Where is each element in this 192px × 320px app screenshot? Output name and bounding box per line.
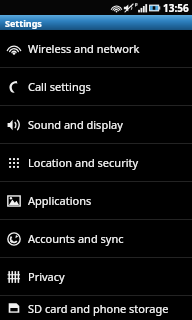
staticText: Wireless and network — [28, 41, 140, 56]
staticText: 13:56 — [163, 1, 189, 15]
button[interactable]: Location and security — [0, 144, 192, 181]
button[interactable]: Wireless and network — [0, 30, 192, 67]
staticText: Accounts and sync — [28, 231, 124, 246]
staticText: Applications — [28, 193, 92, 208]
staticText: Location and security — [28, 155, 139, 170]
staticText: Call settings — [28, 79, 91, 94]
button[interactable]: Call settings — [0, 68, 192, 105]
staticText: Sound and display — [28, 117, 123, 132]
button[interactable]: Privacy — [0, 258, 192, 295]
staticText: SD card and phone storage — [28, 301, 169, 316]
button[interactable]: Applications — [0, 182, 192, 219]
staticText: Settings — [5, 17, 42, 29]
staticText: Privacy — [28, 269, 65, 284]
button[interactable]: Accounts and sync — [0, 220, 192, 257]
button[interactable]: SD card and phone storage — [0, 296, 192, 320]
button[interactable]: Sound and display — [0, 106, 192, 143]
